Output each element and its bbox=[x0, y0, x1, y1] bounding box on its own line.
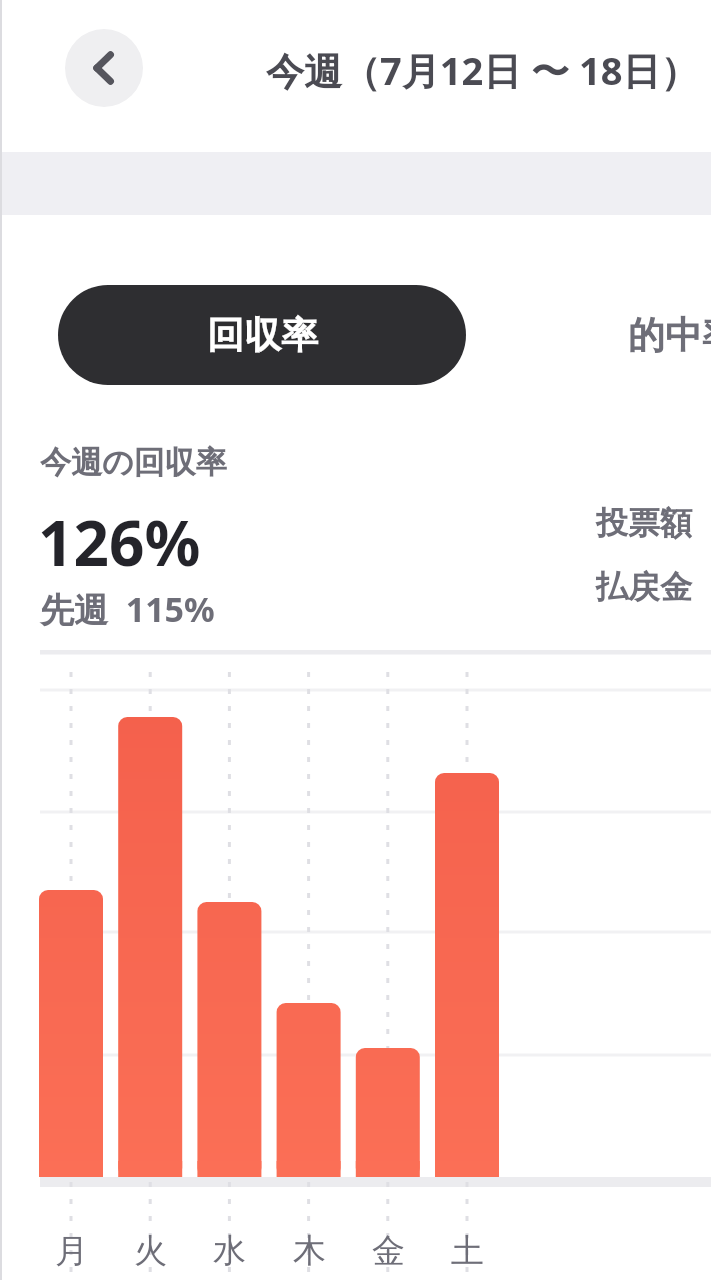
button[interactable]: 的中率 bbox=[598, 285, 711, 385]
staticText: 土 bbox=[451, 1230, 484, 1272]
staticText: 126% bbox=[38, 500, 201, 584]
staticText: 払戻金 bbox=[596, 567, 692, 607]
staticText: 水 bbox=[213, 1230, 246, 1272]
button[interactable]: 回収率 bbox=[58, 285, 466, 385]
staticText: 今週（7月12日 〜 18日） bbox=[266, 44, 699, 96]
button[interactable]: 戻る bbox=[65, 29, 143, 107]
staticText: 的中率 bbox=[628, 312, 711, 359]
staticText: 先週 115% bbox=[40, 586, 215, 632]
staticText: 投票額 bbox=[596, 503, 692, 543]
staticText: 金 bbox=[372, 1230, 405, 1272]
staticText: 回収率 bbox=[207, 312, 318, 359]
staticText: 火 bbox=[134, 1230, 167, 1272]
staticText: 今週の回収率 bbox=[40, 443, 227, 482]
staticText: 月 bbox=[55, 1230, 88, 1272]
staticText: 木 bbox=[293, 1230, 326, 1272]
